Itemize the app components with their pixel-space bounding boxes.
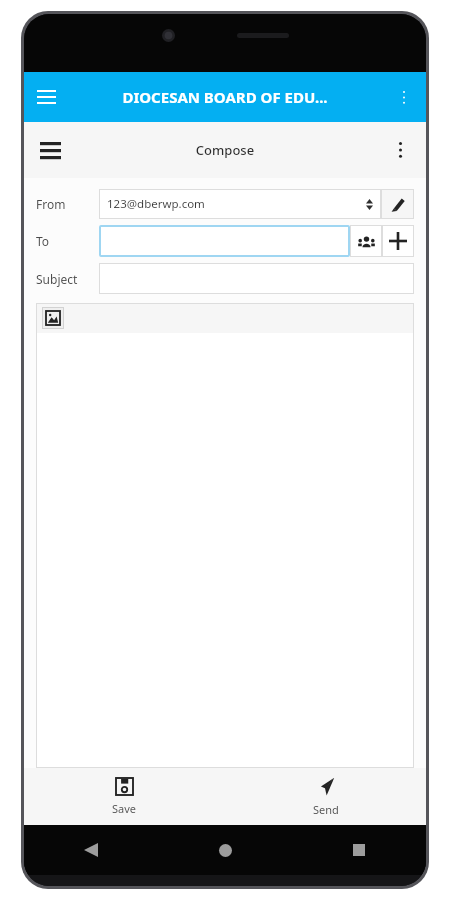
staticText: Send [313, 802, 339, 817]
button[interactable]: More options [382, 75, 426, 119]
button[interactable]: Open navigation drawer [24, 75, 68, 119]
staticText: Save [112, 801, 137, 816]
button[interactable]: Back [24, 825, 158, 875]
button[interactable]: Edit sender address [381, 189, 414, 219]
staticText: To [36, 233, 99, 249]
button[interactable]: Save [24, 768, 225, 825]
staticText: Compose [76, 141, 374, 159]
staticText: 123@dberwp.com [107, 196, 366, 212]
button[interactable]: Send [225, 768, 426, 825]
button[interactable]: 123@dberwp.com [99, 189, 381, 219]
button[interactable]: Home [158, 825, 292, 875]
button[interactable]: Recent apps [292, 825, 426, 875]
button[interactable] [99, 263, 414, 294]
staticText: From [36, 196, 99, 212]
button[interactable]: Choose contacts [350, 225, 382, 257]
staticText: DIOCESAN BOARD OF EDU... [68, 87, 382, 107]
button[interactable] [99, 225, 350, 257]
staticText: Subject [36, 271, 99, 287]
button[interactable]: Insert image [42, 307, 64, 329]
button[interactable]: More options [374, 124, 426, 176]
button[interactable]: Menu [24, 124, 76, 176]
button[interactable]: Add recipient [382, 225, 414, 257]
